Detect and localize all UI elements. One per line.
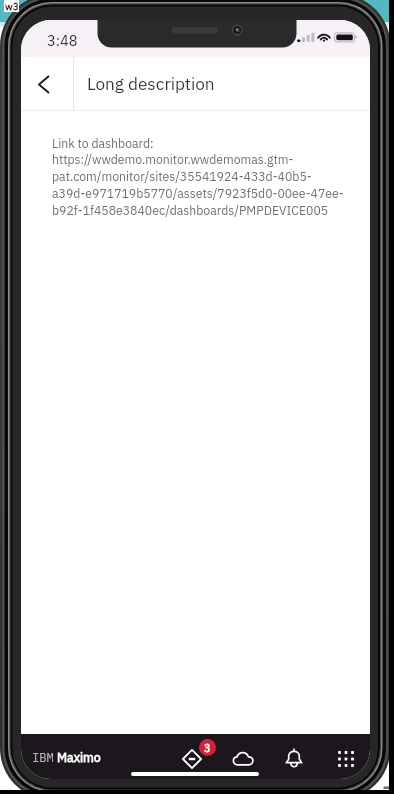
staticText: Long description bbox=[87, 72, 215, 94]
button[interactable]: Apps bbox=[329, 742, 363, 776]
staticText: IBM bbox=[32, 749, 54, 765]
button[interactable]: Cloud bbox=[226, 742, 260, 776]
staticText: 3:48 bbox=[47, 31, 78, 50]
staticText: Link to dashboard: https://wwdemo.monito… bbox=[52, 135, 344, 219]
staticText: w3 bbox=[5, 0, 19, 12]
button[interactable]: Notifications bbox=[277, 742, 311, 776]
staticText: 3 bbox=[204, 741, 211, 755]
staticText: Maximo bbox=[57, 749, 101, 765]
button[interactable]: Work orders bbox=[175, 742, 209, 776]
button[interactable]: w3 bbox=[4, 0, 19, 12]
button[interactable]: Back bbox=[21, 57, 73, 111]
button[interactable]: IBM bbox=[32, 749, 101, 765]
